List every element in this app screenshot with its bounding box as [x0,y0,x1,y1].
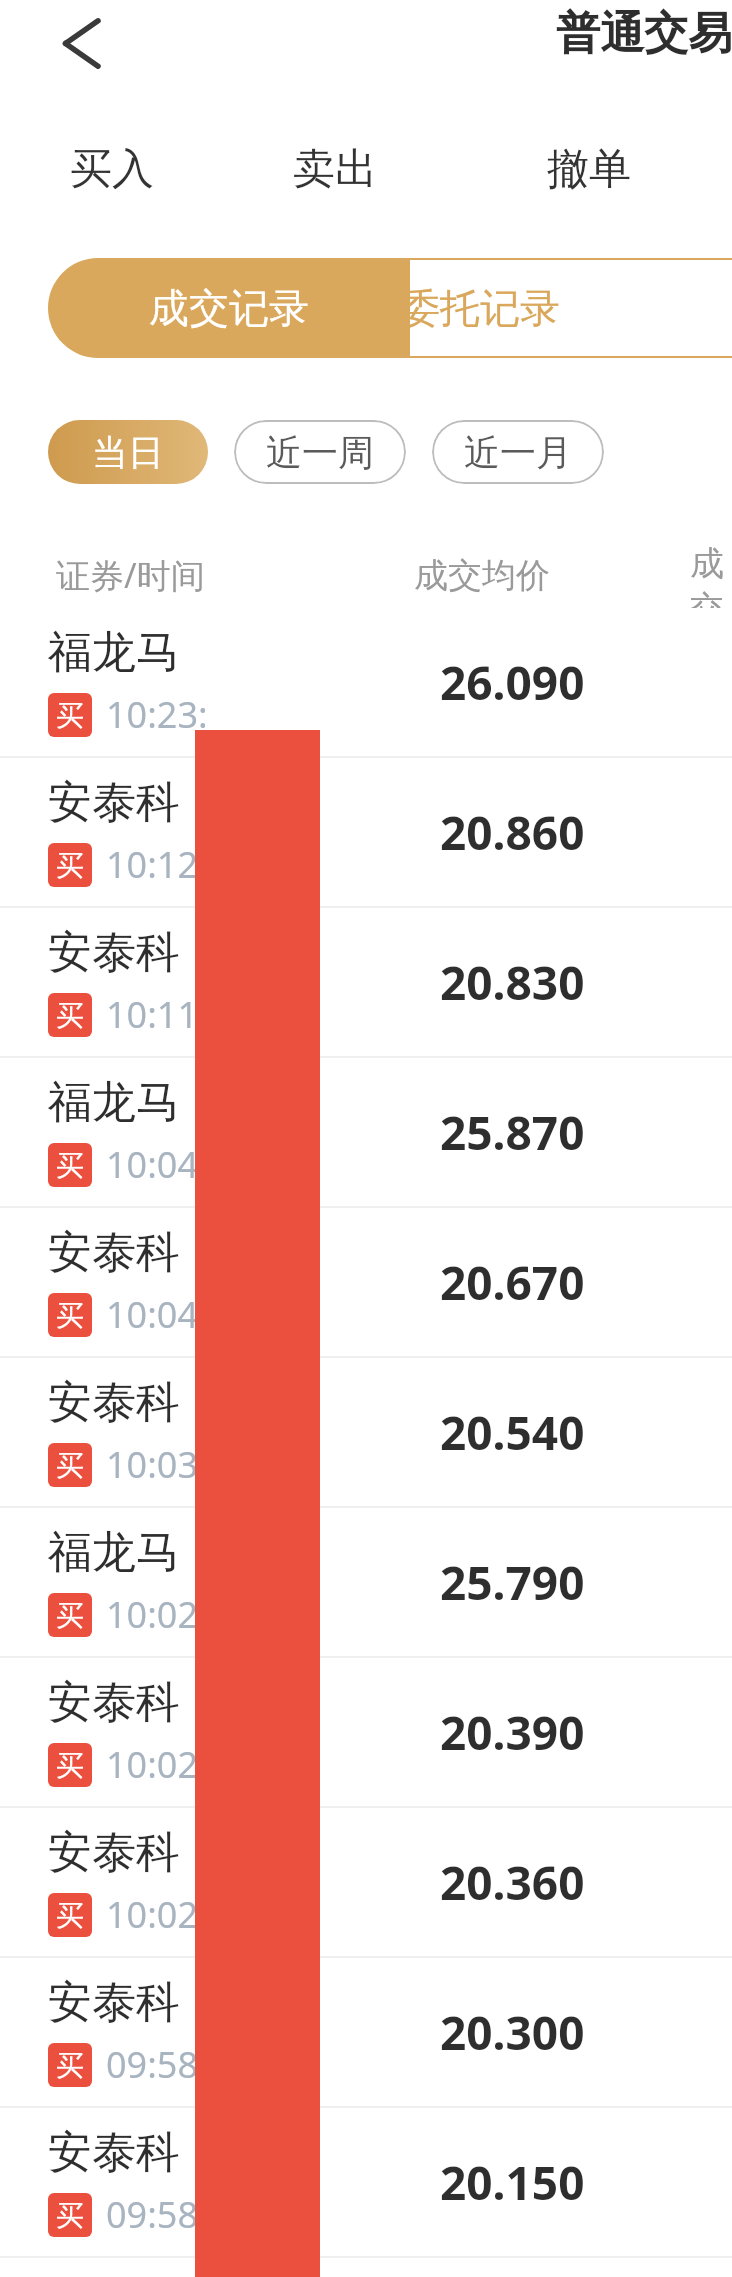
staticText: 安泰科 [48,1975,180,2030]
staticText: 买 [56,698,84,733]
staticText: 20.300 [440,2001,585,2064]
staticText: 20.670 [440,1251,585,1314]
staticText: 25.870 [440,1101,585,1164]
staticText: 25.790 [440,1551,585,1614]
staticText: 安泰科 [48,1225,180,1280]
staticText: 10:23: [106,690,208,739]
staticText: 10:03: [106,1440,208,1489]
staticText: 买 [56,1148,84,1183]
staticText: 安泰科 [48,775,180,830]
button[interactable]: Back [30,4,114,88]
staticText: 买 [56,1448,84,1483]
staticText: 买 [56,998,84,1033]
staticText: 10:04: [106,1290,208,1339]
staticText: 09:58: [106,2040,208,2089]
staticText: 福龙马 [48,1525,180,1580]
staticText: 20.830 [440,951,585,1014]
button[interactable]: 成交记录 [48,258,410,358]
button[interactable]: 卖出 [223,118,446,220]
staticText: 买 [56,2198,84,2233]
staticText: 证券/时间 [56,552,205,598]
staticText: 撤单 [547,143,631,196]
button[interactable]: 近一月 [432,420,604,484]
staticText: 委托记录 [400,283,560,333]
staticText: 当日 [92,430,164,475]
staticText: 卖出 [293,143,377,196]
staticText: 20.540 [440,1401,585,1464]
staticText: 安泰科 [48,925,180,980]
button[interactable]: 买入 [0,118,223,220]
button[interactable]: 当日 [48,420,208,484]
staticText: 10:02: [106,1890,208,1939]
staticText: 买 [56,1748,84,1783]
staticText: 买 [56,1298,84,1333]
staticText: 买 [56,1598,84,1633]
staticText: 09:58: [106,2190,208,2239]
staticText: 安泰科 [48,1375,180,1430]
staticText: 成交 [690,542,732,608]
staticText: 买 [56,2048,84,2083]
staticText: 普通交易 [556,6,732,61]
staticText: 买 [56,1898,84,1933]
staticText: 福龙马 [48,625,180,680]
staticText: 近一月 [464,430,572,475]
staticText: 买入 [70,143,154,196]
staticText: 安泰科 [48,1825,180,1880]
staticText: 20.150 [440,2151,585,2214]
staticText: 26.090 [440,651,585,714]
staticText: 安泰科 [48,2125,180,2180]
staticText: 成交均价 [414,554,550,597]
button[interactable]: 撤单 [446,118,732,220]
staticText: 20.360 [440,1851,585,1914]
staticText: 安泰科 [48,1675,180,1730]
staticText: 10:12: [106,840,208,889]
staticText: 10:04: [106,1140,208,1189]
staticText: 成交记录 [149,283,309,333]
staticText: 10:02: [106,1590,208,1639]
staticText: 福龙马 [48,1075,180,1130]
staticText: 10:11: [106,990,208,1039]
staticText: 10:02: [106,1740,208,1789]
button[interactable]: 委托记录 [338,258,732,358]
staticText: 买 [56,848,84,883]
button[interactable]: 近一周 [234,420,406,484]
staticText: 20.390 [440,1701,585,1764]
staticText: 20.860 [440,801,585,864]
staticText: 近一周 [266,430,374,475]
